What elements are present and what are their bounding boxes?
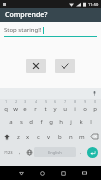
button[interactable]: English <box>34 147 76 157</box>
button[interactable]: Enter <box>87 147 98 158</box>
staticText: 11:50 <box>88 2 99 7</box>
button[interactable]: , <box>15 144 24 160</box>
staticText: f <box>40 118 43 126</box>
staticText: 2 <box>15 100 17 104</box>
staticText: Comprende? <box>5 10 48 20</box>
button[interactable]: v <box>43 129 54 144</box>
button[interactable]: Shift <box>0 129 13 144</box>
staticText: 5 <box>45 100 47 104</box>
button[interactable]: 4 <box>30 99 40 114</box>
staticText: e <box>23 105 27 113</box>
button[interactable]: n <box>65 129 76 144</box>
staticText: , <box>19 149 21 156</box>
button[interactable]: h <box>56 114 66 129</box>
button[interactable]: c <box>33 129 43 144</box>
staticText: n <box>69 133 73 141</box>
button[interactable]: Back <box>11 166 32 180</box>
staticText: u <box>63 105 67 113</box>
staticText: i <box>74 105 76 113</box>
button[interactable]: s <box>16 114 26 129</box>
staticText: c <box>37 133 40 141</box>
button[interactable]: j <box>66 114 76 129</box>
button[interactable]: k <box>76 114 86 129</box>
button[interactable]: l <box>86 114 96 129</box>
button[interactable]: z <box>13 129 23 144</box>
staticText: a <box>9 118 13 126</box>
staticText: q <box>4 105 8 113</box>
staticText: Stop staring!! <box>4 26 42 34</box>
staticText: v <box>47 133 51 141</box>
button[interactable]: b <box>54 129 65 144</box>
staticText: b <box>58 133 62 141</box>
button[interactable]: a <box>5 114 16 129</box>
button[interactable]: f <box>36 114 46 129</box>
button[interactable]: 5 <box>40 99 50 114</box>
button[interactable]: m <box>76 129 87 144</box>
button[interactable]: g <box>46 114 56 129</box>
button[interactable]: 2 <box>10 99 20 114</box>
button[interactable]: 0 <box>90 99 100 114</box>
staticText: m <box>79 133 85 141</box>
button[interactable]: ?123 <box>1 144 15 160</box>
staticText: s <box>20 118 23 126</box>
button[interactable]: . <box>76 144 85 160</box>
button[interactable]: Voice input <box>91 90 98 97</box>
button[interactable]: 1 <box>1 99 10 114</box>
staticText: English <box>48 150 62 155</box>
button[interactable]: x <box>23 129 33 144</box>
button[interactable]: Change language <box>24 144 34 160</box>
button[interactable]: Confirm <box>55 59 75 73</box>
button[interactable]: Backspace <box>87 129 101 144</box>
staticText: 7 <box>64 100 66 104</box>
staticText: w <box>13 105 18 113</box>
staticText: r <box>34 105 37 113</box>
staticText: 9 <box>84 100 86 104</box>
button[interactable]: Stop staring!! <box>4 26 97 37</box>
staticText: 1 <box>5 100 7 104</box>
staticText: 4 <box>35 100 37 104</box>
staticText: 0 <box>94 100 96 104</box>
staticText: l <box>90 118 92 126</box>
button[interactable]: 8 <box>70 99 80 114</box>
staticText: j <box>70 118 72 126</box>
button[interactable]: d <box>26 114 36 129</box>
button[interactable]: 3 <box>20 99 30 114</box>
staticText: t <box>44 105 47 113</box>
button[interactable]: Home <box>32 166 53 180</box>
staticText: 6 <box>54 100 56 104</box>
button[interactable]: Cancel <box>26 59 46 73</box>
button[interactable]: 7 <box>60 99 70 114</box>
staticText: d <box>29 118 33 126</box>
staticText: . <box>80 149 82 156</box>
button[interactable]: 9 <box>80 99 90 114</box>
staticText: k <box>79 118 83 126</box>
button[interactable]: Switch keyboard <box>74 166 95 180</box>
staticText: o <box>83 105 87 113</box>
staticText: y <box>53 105 57 113</box>
staticText: g <box>49 118 53 126</box>
staticText: ?123 <box>4 150 13 155</box>
staticText: 8 <box>74 100 76 104</box>
staticText: z <box>17 133 20 141</box>
staticText: h <box>59 118 63 126</box>
staticText: 3 <box>24 100 26 104</box>
staticText: x <box>26 133 30 141</box>
button[interactable]: 6 <box>50 99 60 114</box>
button[interactable]: Recent apps <box>53 166 74 180</box>
staticText: p <box>93 105 97 113</box>
